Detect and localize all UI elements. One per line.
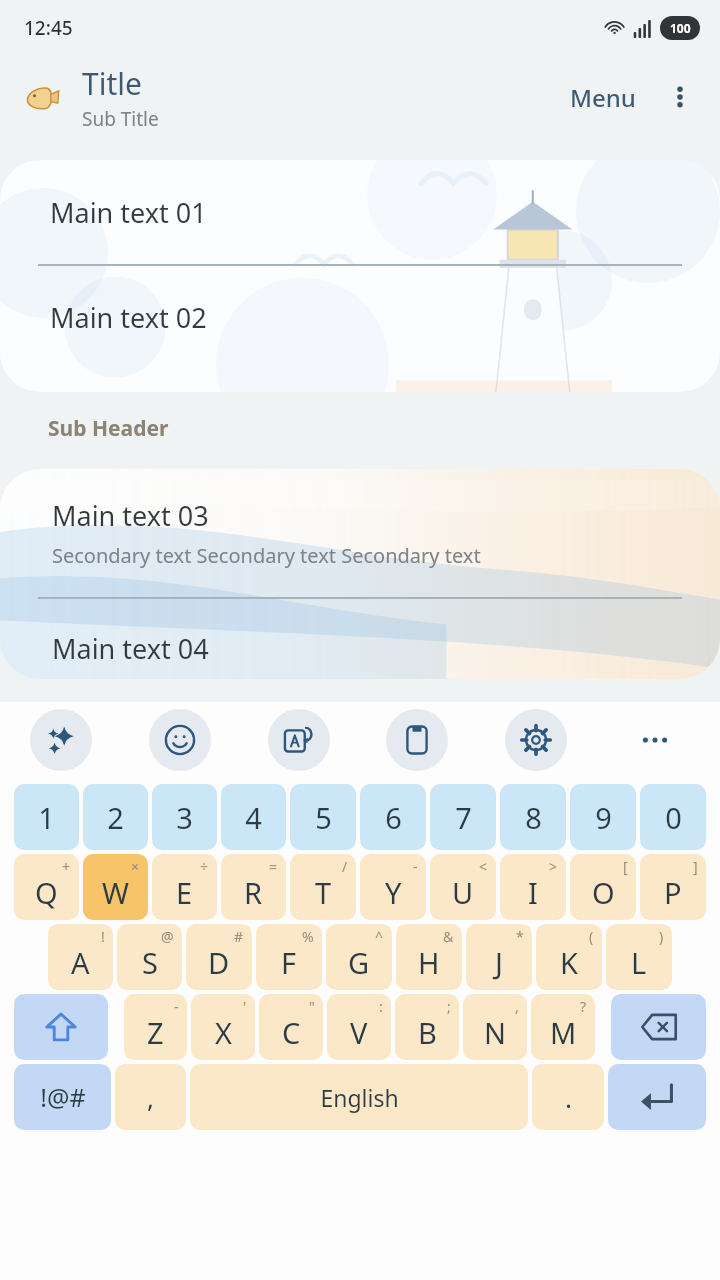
button[interactable]: 8 xyxy=(500,784,566,850)
staticText: @ xyxy=(161,927,174,946)
button[interactable]: ) xyxy=(606,924,672,990)
button[interactable]: × xyxy=(83,854,148,920)
staticText: ? xyxy=(580,997,587,1016)
staticText: B xyxy=(418,1013,437,1052)
staticText: !@# xyxy=(40,1080,86,1114)
button[interactable]: & xyxy=(396,924,462,990)
button[interactable]: 1 xyxy=(14,784,79,850)
staticText: H xyxy=(418,943,440,982)
staticText: Y xyxy=(385,873,402,912)
button[interactable]: , xyxy=(463,994,527,1060)
button[interactable]: More options xyxy=(658,75,702,119)
button[interactable]: 4 xyxy=(221,784,286,850)
staticText: S xyxy=(142,943,158,982)
staticText: R xyxy=(244,873,263,912)
staticText: N xyxy=(484,1013,507,1052)
staticText: J xyxy=(495,943,503,982)
staticText: G xyxy=(348,943,370,982)
button[interactable]: ? xyxy=(531,994,595,1060)
staticText: > xyxy=(549,857,558,876)
button[interactable]: 2 xyxy=(83,784,148,850)
staticText: 1 xyxy=(38,798,55,837)
staticText: 3 xyxy=(176,798,193,837)
button[interactable]: More xyxy=(624,709,686,771)
button[interactable]: # xyxy=(186,924,252,990)
staticText: : xyxy=(379,997,383,1016)
button[interactable]: " xyxy=(259,994,323,1060)
staticText: T xyxy=(315,873,332,912)
staticText: M xyxy=(550,1013,577,1052)
button[interactable]: ] xyxy=(640,854,706,920)
staticText: ' xyxy=(243,997,247,1016)
staticText: # xyxy=(234,927,244,946)
button[interactable]: + xyxy=(14,854,79,920)
staticText: F xyxy=(281,943,297,982)
staticText: 7 xyxy=(455,798,472,837)
staticText: C xyxy=(282,1013,301,1052)
button[interactable]: ^ xyxy=(326,924,392,990)
staticText: & xyxy=(443,927,454,946)
button[interactable]: ' xyxy=(191,994,255,1060)
button[interactable]: > xyxy=(500,854,566,920)
staticText: ÷ xyxy=(200,857,209,876)
button[interactable]: Main text 01 xyxy=(0,160,720,264)
button[interactable]: Main text 03 xyxy=(0,469,720,597)
button[interactable]: AI suggestions xyxy=(30,709,92,771)
button[interactable]: Settings xyxy=(505,709,567,771)
button[interactable]: Translate xyxy=(268,709,330,771)
button[interactable]: Menu xyxy=(562,75,644,120)
button[interactable]: English xyxy=(190,1064,528,1130)
button[interactable]: 6 xyxy=(360,784,426,850)
button[interactable]: * xyxy=(466,924,532,990)
staticText: = xyxy=(269,857,278,876)
button[interactable]: . xyxy=(532,1064,604,1130)
button[interactable]: ( xyxy=(536,924,602,990)
button[interactable]: Emoji xyxy=(149,709,211,771)
button[interactable]: ! xyxy=(48,924,113,990)
staticText: 5 xyxy=(315,798,332,837)
staticText: - xyxy=(174,997,179,1016)
staticText: . xyxy=(565,1080,572,1115)
button[interactable]: Main text 04 xyxy=(0,599,720,679)
staticText: + xyxy=(62,857,71,876)
button[interactable]: ; xyxy=(395,994,459,1060)
button[interactable]: @ xyxy=(117,924,182,990)
staticText: L xyxy=(631,943,647,982)
button[interactable]: : xyxy=(327,994,391,1060)
staticText: ! xyxy=(101,927,105,946)
staticText: 4 xyxy=(245,798,262,837)
button[interactable]: Backspace xyxy=(611,994,706,1060)
staticText: Main text 04 xyxy=(52,630,209,667)
button[interactable]: 5 xyxy=(290,784,356,850)
staticText: 12:45 xyxy=(24,15,73,41)
button[interactable]: < xyxy=(430,854,496,920)
staticText: 6 xyxy=(385,798,402,837)
button[interactable]: 9 xyxy=(570,784,636,850)
button[interactable]: - xyxy=(360,854,426,920)
button[interactable]: / xyxy=(290,854,356,920)
staticText: Sub Header xyxy=(48,414,169,443)
button[interactable]: Enter xyxy=(608,1064,706,1130)
button[interactable]: Clipboard xyxy=(386,709,448,771)
button[interactable]: - xyxy=(124,994,187,1060)
button[interactable]: % xyxy=(256,924,322,990)
staticText: ; xyxy=(447,997,451,1016)
button[interactable]: !@# xyxy=(14,1064,111,1130)
staticText: % xyxy=(302,927,314,946)
button[interactable]: Main text 02 xyxy=(0,266,720,392)
button[interactable]: , xyxy=(115,1064,186,1130)
button[interactable]: ÷ xyxy=(152,854,217,920)
button[interactable]: Shift xyxy=(14,994,108,1060)
button[interactable]: 7 xyxy=(430,784,496,850)
button[interactable]: 0 xyxy=(640,784,706,850)
button[interactable]: = xyxy=(221,854,286,920)
staticText: 8 xyxy=(525,798,542,837)
button[interactable]: 3 xyxy=(152,784,217,850)
button[interactable]: [ xyxy=(570,854,636,920)
staticText: E xyxy=(176,873,193,912)
staticText: Title xyxy=(82,63,142,104)
staticText: English xyxy=(320,1082,399,1113)
staticText: , xyxy=(515,997,519,1016)
staticText: 100 xyxy=(670,20,691,36)
staticText: [ xyxy=(623,857,628,876)
